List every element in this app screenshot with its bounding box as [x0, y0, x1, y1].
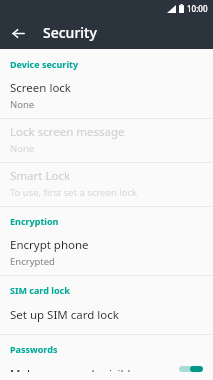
staticText: Make passwords visible	[10, 366, 177, 372]
button[interactable]: Set up SIM card lock	[0, 301, 213, 334]
button[interactable]: Screen lock	[0, 75, 213, 118]
staticText: 10:00	[187, 3, 208, 14]
staticText: Smart Lock	[10, 168, 71, 184]
staticText: To use, first set a screen lock	[10, 186, 138, 199]
staticText: Set up SIM card lock	[10, 307, 119, 323]
staticText: Encrypted	[10, 255, 55, 268]
staticText: Encrypt phone	[10, 237, 89, 253]
staticText: Lock screen message	[10, 124, 125, 140]
staticText: None	[10, 142, 35, 155]
button[interactable]: Back	[6, 21, 30, 45]
staticText: Screen lock	[10, 80, 72, 96]
button[interactable]: Encrypt phone	[0, 232, 213, 275]
button[interactable]: Smart Lock	[0, 163, 213, 206]
button[interactable]: Make passwords visible	[0, 360, 213, 380]
staticText: Security	[43, 23, 97, 42]
staticText: Encryption	[10, 215, 213, 227]
staticText: Passwords	[10, 343, 213, 355]
button[interactable]: Lock screen message	[0, 119, 213, 162]
staticText: SIM card lock	[10, 284, 213, 296]
staticText: Device security	[10, 58, 213, 70]
staticText: None	[10, 98, 35, 111]
